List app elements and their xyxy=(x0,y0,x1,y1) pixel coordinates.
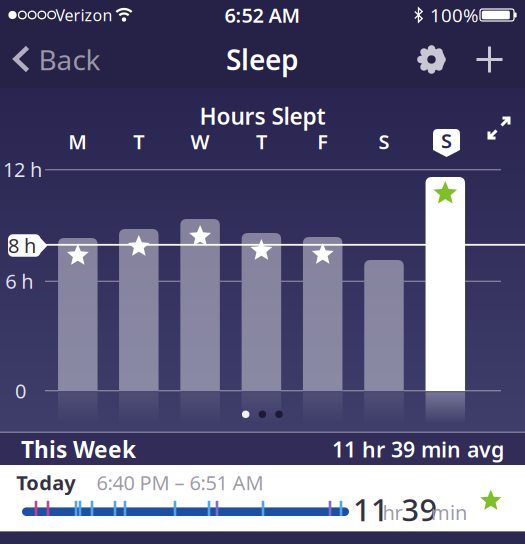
staticText: 0 xyxy=(15,377,26,404)
staticText: 11 hr 39 min avg xyxy=(332,435,504,463)
staticText: hr xyxy=(382,499,402,526)
staticText: 8 h xyxy=(8,232,36,259)
staticText: W xyxy=(191,128,210,155)
staticText: 11 xyxy=(353,489,389,530)
button[interactable]: Expand chart xyxy=(481,110,517,146)
staticText: Sleep xyxy=(226,41,299,78)
staticText: 39 xyxy=(401,489,437,530)
staticText: 6:52 AM xyxy=(224,2,300,28)
staticText: Hours Slept xyxy=(199,101,325,131)
staticText: Back xyxy=(38,41,100,78)
button[interactable]: Add xyxy=(467,37,511,81)
staticText: Today xyxy=(16,469,75,496)
staticText: 6 h xyxy=(5,268,33,294)
button[interactable]: Today xyxy=(0,465,525,531)
staticText: S xyxy=(441,127,452,154)
staticText: 100% xyxy=(430,3,479,27)
staticText: min xyxy=(431,499,467,526)
staticText: T xyxy=(133,128,144,155)
button[interactable]: Back xyxy=(6,37,106,81)
staticText: 12 h xyxy=(3,156,42,183)
staticText: S xyxy=(378,128,389,155)
staticText: F xyxy=(317,128,328,155)
button[interactable]: Settings xyxy=(409,37,453,81)
staticText: M xyxy=(68,128,87,155)
staticText: Verizon xyxy=(55,4,112,26)
staticText: T xyxy=(256,128,267,155)
staticText: 6:40 PM – 6:51 AM xyxy=(96,469,263,496)
staticText: This Week xyxy=(21,434,136,464)
